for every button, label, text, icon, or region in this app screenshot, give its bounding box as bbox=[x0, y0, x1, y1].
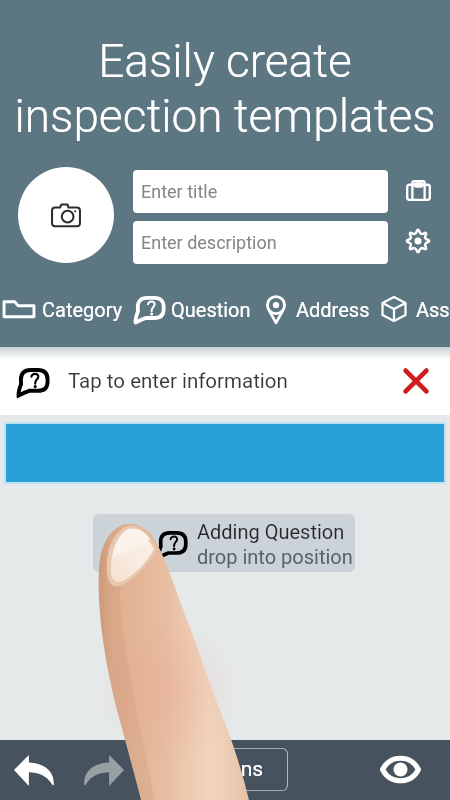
staticText: Adding Question bbox=[197, 520, 345, 543]
button[interactable]: Asset bbox=[380, 294, 450, 324]
staticText: Enter title bbox=[141, 181, 218, 202]
button[interactable]: Enter description bbox=[133, 221, 388, 264]
button[interactable]: Briefcase bbox=[398, 170, 438, 210]
button[interactable]: Redo bbox=[74, 745, 134, 795]
button[interactable]: Add photo bbox=[18, 167, 114, 263]
staticText: inspection templates bbox=[0, 89, 450, 143]
button[interactable]: Tap to enter information bbox=[0, 347, 450, 415]
staticText: Address bbox=[296, 298, 370, 321]
staticText: Asset bbox=[416, 298, 450, 321]
button[interactable]: Settings bbox=[398, 221, 438, 261]
staticText: Enter description bbox=[141, 232, 277, 253]
button[interactable]: Preview bbox=[375, 744, 425, 794]
staticText: Easily create bbox=[0, 34, 450, 88]
button[interactable]: Address bbox=[265, 294, 370, 324]
staticText: Question bbox=[171, 298, 251, 321]
staticText: Tap to enter information bbox=[68, 369, 288, 393]
button[interactable]: Actions bbox=[168, 748, 288, 791]
staticText: Actions bbox=[192, 757, 264, 782]
button[interactable]: Close bbox=[398, 363, 434, 399]
button[interactable]: Category bbox=[0, 294, 123, 324]
button[interactable]: Enter title bbox=[133, 170, 388, 213]
staticText: drop into position bbox=[197, 545, 353, 568]
button[interactable]: Undo bbox=[4, 745, 64, 795]
staticText: Category bbox=[42, 298, 123, 321]
button[interactable]: Question bbox=[134, 294, 251, 324]
